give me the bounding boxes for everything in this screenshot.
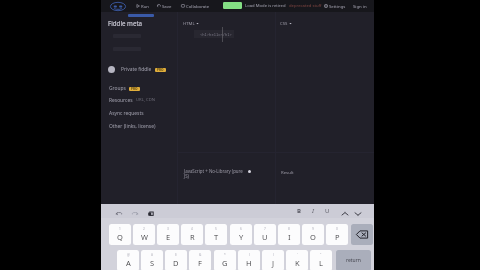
staticText: S bbox=[150, 258, 155, 268]
staticText: Load Mode is retired bbox=[245, 3, 286, 9]
button[interactable]: CSS bbox=[280, 20, 292, 26]
staticText: ( bbox=[249, 253, 250, 257]
button[interactable]: ( bbox=[238, 250, 260, 270]
staticText: I bbox=[312, 207, 314, 215]
button[interactable]: JSFiddle home bbox=[109, 1, 127, 12]
staticText: G bbox=[222, 258, 228, 268]
button[interactable]: 0 bbox=[326, 224, 348, 245]
button[interactable]: 8 bbox=[278, 224, 300, 245]
staticText: @ bbox=[127, 253, 130, 257]
button[interactable]: $ bbox=[165, 250, 187, 270]
button[interactable]: Backspace bbox=[351, 224, 373, 245]
button[interactable]: Previous field bbox=[340, 209, 350, 219]
staticText: O bbox=[310, 232, 316, 242]
staticText: Q bbox=[117, 232, 123, 242]
staticText: A bbox=[126, 258, 131, 268]
staticText: Private fiddle bbox=[121, 66, 152, 73]
button[interactable]: Run bbox=[135, 0, 150, 12]
staticText: Async requests bbox=[109, 110, 144, 116]
button[interactable]: New fiddle bbox=[223, 2, 242, 9]
staticText: 8 bbox=[288, 227, 290, 231]
button[interactable]: Next field bbox=[353, 209, 363, 219]
staticText: K bbox=[295, 258, 300, 268]
staticText: H bbox=[246, 258, 252, 268]
staticText: PRO bbox=[157, 68, 164, 72]
staticText: Sign in bbox=[353, 3, 367, 9]
staticText: Y bbox=[239, 232, 244, 242]
staticText: J bbox=[272, 258, 275, 268]
button[interactable]: 1 bbox=[109, 224, 131, 245]
button[interactable]: HTML bbox=[183, 20, 199, 26]
staticText: PRO bbox=[131, 87, 138, 91]
staticText: 6 bbox=[240, 227, 242, 231]
staticText: 4 bbox=[191, 227, 193, 231]
staticText: return bbox=[346, 257, 361, 264]
staticText: HTML bbox=[183, 20, 195, 26]
button[interactable]: Other (links, license) bbox=[109, 123, 156, 129]
staticText: ' bbox=[297, 253, 298, 257]
button[interactable]: Undo bbox=[114, 209, 124, 219]
staticText: # bbox=[151, 253, 154, 257]
button[interactable]: Sign in bbox=[352, 0, 368, 12]
staticText: & bbox=[199, 253, 202, 257]
staticText: Settings bbox=[329, 3, 346, 9]
button[interactable]: B bbox=[294, 206, 304, 216]
staticText: 0 bbox=[336, 227, 338, 231]
staticText: Run bbox=[141, 3, 149, 9]
staticText: ) bbox=[273, 253, 274, 257]
button[interactable]: JavaScript + No-Library (pure JS) bbox=[184, 168, 244, 179]
button[interactable]: @ bbox=[117, 250, 139, 270]
button[interactable]: 9 bbox=[302, 224, 324, 245]
staticText: B bbox=[297, 207, 301, 215]
staticText: Fiddle meta bbox=[108, 19, 143, 27]
button[interactable]: 2 bbox=[133, 224, 155, 245]
button[interactable]: Settings bbox=[323, 0, 347, 12]
staticText: Groups bbox=[109, 85, 126, 92]
staticText: <h1>hello</h1> bbox=[200, 32, 232, 37]
button[interactable]: # bbox=[141, 250, 163, 270]
staticText: 2 bbox=[143, 227, 145, 231]
button[interactable]: Save bbox=[156, 0, 173, 12]
button[interactable]: Resources bbox=[109, 97, 155, 103]
staticText: $ bbox=[175, 253, 177, 257]
button[interactable]: 7 bbox=[254, 224, 276, 245]
button[interactable]: 6 bbox=[230, 224, 252, 245]
button[interactable]: U bbox=[322, 206, 332, 216]
button[interactable]: Fiddle meta tab bbox=[128, 14, 154, 17]
button[interactable]: I bbox=[308, 206, 318, 216]
staticText: Other (links, license) bbox=[109, 123, 156, 129]
button[interactable]: Async requests bbox=[109, 110, 144, 116]
staticText: Resources bbox=[109, 97, 133, 103]
button[interactable]: Private fiddle bbox=[108, 66, 166, 73]
staticText: R bbox=[190, 232, 195, 242]
button[interactable]: Paste bbox=[146, 209, 156, 219]
button[interactable]: & bbox=[189, 250, 211, 270]
staticText: 5 bbox=[215, 227, 217, 231]
button[interactable]: Groups bbox=[109, 85, 140, 92]
staticText: I bbox=[288, 232, 291, 242]
staticText: Result bbox=[281, 169, 294, 175]
staticText: deprecated stuff bbox=[289, 3, 322, 9]
button[interactable]: ) bbox=[262, 250, 284, 270]
button[interactable]: Redo bbox=[130, 209, 140, 219]
staticText: 3 bbox=[167, 227, 169, 231]
button[interactable]: 4 bbox=[181, 224, 203, 245]
staticText: JavaScript + No-Library (pure JS) bbox=[184, 168, 244, 179]
button[interactable]: Result bbox=[281, 169, 294, 175]
button[interactable]: 3 bbox=[157, 224, 179, 245]
staticText: D bbox=[173, 258, 179, 268]
staticText: " bbox=[320, 253, 322, 257]
button[interactable]: 5 bbox=[205, 224, 227, 245]
button[interactable]: ' bbox=[286, 250, 308, 270]
button[interactable]: * bbox=[214, 250, 236, 270]
button[interactable]: " bbox=[310, 250, 332, 270]
staticText: W bbox=[141, 232, 148, 242]
button[interactable]: Collaborate bbox=[180, 0, 211, 12]
staticText: Collaborate bbox=[186, 3, 210, 9]
button[interactable]: return bbox=[336, 250, 371, 270]
staticText: CSS bbox=[280, 20, 288, 26]
staticText: URL, CDN bbox=[136, 97, 155, 103]
staticText: F bbox=[198, 258, 202, 268]
